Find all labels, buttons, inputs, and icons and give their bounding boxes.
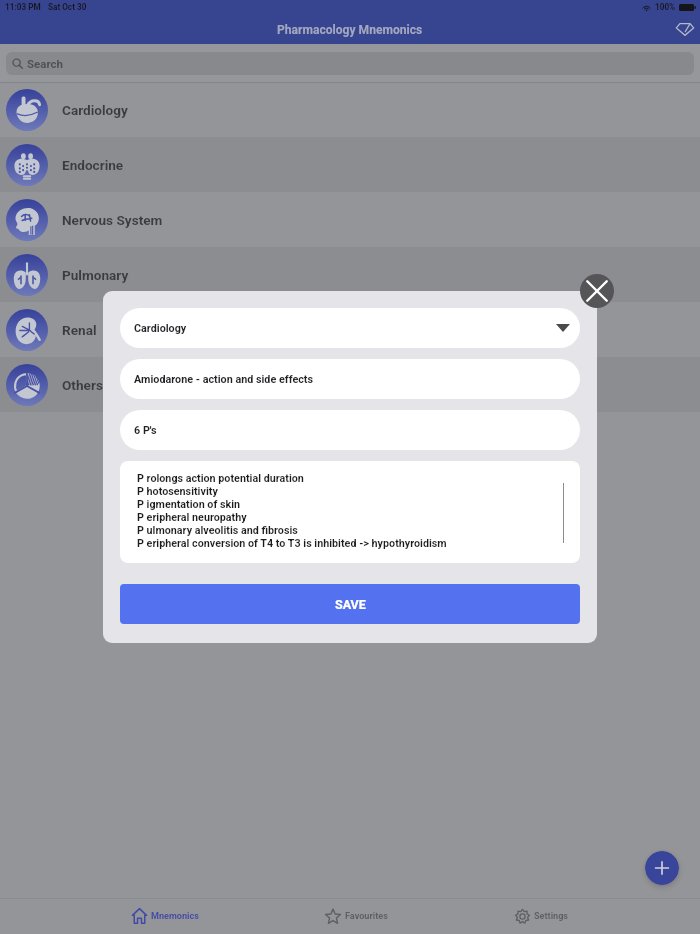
- button[interactable]: Renal: [0, 302, 700, 357]
- staticText: Settings: [534, 911, 569, 922]
- button[interactable]: P rolongs action potential duration: [120, 461, 580, 563]
- staticText: Search: [27, 57, 63, 70]
- staticText: SAVE: [335, 597, 366, 612]
- staticText: P igmentation of skin: [137, 498, 241, 511]
- staticText: Cardiology: [62, 102, 128, 118]
- staticText: P eripheral conversion of T4 to T3 is in…: [137, 537, 447, 550]
- staticText: 6 P's: [134, 424, 157, 437]
- staticText: Renal: [62, 322, 97, 338]
- button[interactable]: Pulmonary: [0, 247, 700, 302]
- staticText: 11:03 PM: [5, 2, 41, 12]
- staticText: P hotosensitivity: [137, 485, 218, 498]
- button[interactable]: Amiodarone - action and side effects: [120, 359, 580, 399]
- staticText: P ulmonary alveolitis and fibrosis: [137, 524, 298, 537]
- button[interactable]: Mnemonics: [131, 905, 199, 927]
- staticText: Pulmonary: [62, 267, 129, 283]
- staticText: Pharmacology Mnemonics: [277, 23, 423, 37]
- staticText: Sat Oct 30: [48, 2, 87, 12]
- staticText: P eripheral neuropathy: [137, 511, 247, 524]
- staticText: Others: [62, 377, 103, 393]
- staticText: Cardiology: [134, 322, 187, 335]
- staticText: P rolongs action potential duration: [137, 472, 304, 485]
- staticText: 100%: [655, 2, 676, 12]
- button[interactable]: Settings: [514, 905, 569, 927]
- button[interactable]: Nervous System: [0, 192, 700, 247]
- staticText: Amiodarone - action and side effects: [134, 373, 314, 386]
- button[interactable]: SAVE: [120, 584, 580, 624]
- button[interactable]: 6 P's: [120, 410, 580, 450]
- staticText: Favourites: [345, 911, 388, 922]
- button[interactable]: Add mnemonic: [645, 851, 679, 885]
- staticText: Nervous System: [62, 212, 163, 228]
- button[interactable]: Close: [580, 274, 614, 308]
- staticText: Mnemonics: [151, 911, 199, 922]
- button[interactable]: Search: [6, 52, 694, 75]
- button[interactable]: Premium: [670, 14, 699, 43]
- button[interactable]: Others: [0, 357, 700, 412]
- button[interactable]: Favourites: [325, 905, 388, 927]
- button[interactable]: Cardiology: [120, 308, 580, 348]
- staticText: Endocrine: [62, 157, 124, 173]
- button[interactable]: Endocrine: [0, 137, 700, 192]
- button[interactable]: Cardiology: [0, 82, 700, 137]
